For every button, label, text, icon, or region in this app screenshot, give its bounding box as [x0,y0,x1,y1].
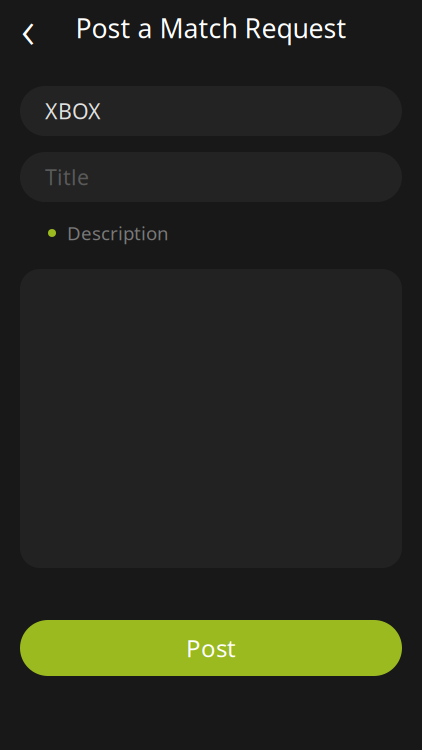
staticText: Title [45,163,89,191]
staticText: Post a Match Request [75,10,346,46]
staticText: XBOX [45,97,101,125]
button[interactable]: XBOX [20,86,402,136]
staticText: Description [67,221,169,245]
button[interactable]: Title [20,152,402,202]
button[interactable]: Back [6,6,50,50]
staticText: ‹ [21,0,35,63]
button[interactable]: Post [20,620,402,676]
staticText: Post [186,632,236,664]
